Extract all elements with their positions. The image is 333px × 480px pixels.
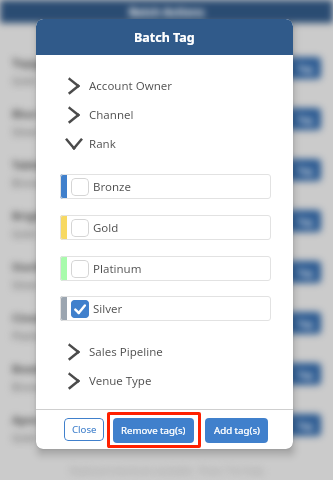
staticText: Topgolf Atlanta <box>12 55 97 70</box>
staticText: Bronze · Direct · Denver CO <box>12 176 146 190</box>
button[interactable]: Silver <box>60 296 271 321</box>
staticText: Gold · Direct · Austin TX <box>12 431 127 445</box>
button[interactable]: Rank <box>64 133 264 155</box>
staticText: Gold · Direct · Atlanta GA <box>12 74 134 88</box>
staticText: Apex Entertainment <box>12 412 123 427</box>
staticText: Tag <box>297 317 313 330</box>
button[interactable]: Bronze <box>60 174 271 199</box>
staticText: Account Owner <box>89 78 173 94</box>
staticText: Batch Tag <box>134 29 195 46</box>
staticText: Rank <box>89 136 116 152</box>
staticText: Add tag(s) <box>214 424 260 437</box>
staticText: Gold · Partner · Boston MA <box>12 227 143 241</box>
button[interactable]: Platinum <box>60 256 271 281</box>
staticText: Cinemark Holdings <box>12 310 117 325</box>
staticText: Batch Actions <box>129 4 205 19</box>
staticText: Silver <box>93 301 123 317</box>
staticText: Tabletop Media <box>12 157 97 172</box>
button[interactable]: Close <box>64 418 104 441</box>
staticText: Bowlero Corp <box>12 361 86 376</box>
staticText: Channel <box>89 107 134 123</box>
button[interactable]: Gold <box>60 215 271 240</box>
staticText: Tag <box>297 164 313 177</box>
staticText: Remove tag(s) <box>121 424 186 437</box>
staticText: Platinum <box>93 261 142 277</box>
staticText: Tag <box>297 368 313 381</box>
staticText: Starlight Venue <box>12 259 98 274</box>
staticText: Tag <box>297 62 313 75</box>
staticText: Tag <box>297 266 313 279</box>
staticText: Close <box>72 423 97 436</box>
button[interactable]: Remove tag(s) <box>113 418 194 443</box>
staticText: Bronze · Partner · Mesa AZ <box>12 380 143 394</box>
staticText: Sales Pipeline <box>89 344 163 360</box>
button[interactable]: Account Owner <box>64 75 264 97</box>
button[interactable]: Venue Type <box>64 370 264 392</box>
staticText: Tag <box>297 419 313 432</box>
staticText: Blue Moon Events <box>12 106 110 121</box>
button[interactable]: Channel <box>64 104 264 126</box>
staticText: Silver · Direct · Tampa FL <box>12 278 132 292</box>
staticText: Bronze <box>93 179 131 195</box>
staticText: Tag <box>297 215 313 228</box>
button[interactable]: Sales Pipeline <box>64 341 264 363</box>
staticText: Venue Type <box>89 373 152 389</box>
staticText: Platinum · Direct · Reno NV <box>12 329 145 343</box>
staticText: Tag <box>297 113 313 126</box>
staticText: Gold <box>93 220 119 236</box>
button[interactable]: Add tag(s) <box>205 418 268 443</box>
staticText: Brightline Group <box>12 208 104 223</box>
staticText: Silver · Partner · Dallas TX <box>12 125 138 139</box>
